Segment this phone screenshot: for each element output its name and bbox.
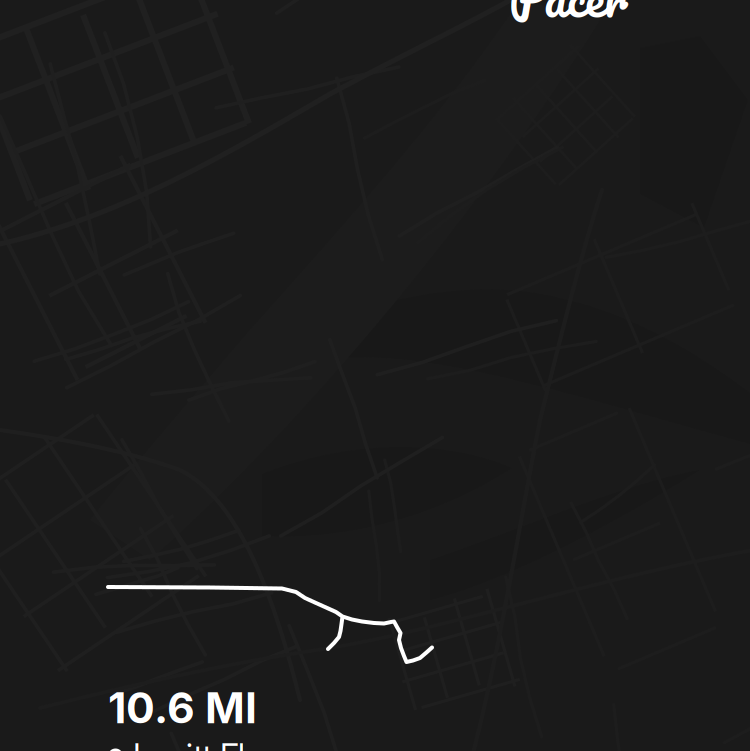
staticText: 10.6 MI [108, 682, 257, 734]
button[interactable]: Pacer [0, 0, 750, 751]
staticText: Pacer [509, 0, 628, 39]
staticText: Lovitt Fl [133, 736, 245, 751]
